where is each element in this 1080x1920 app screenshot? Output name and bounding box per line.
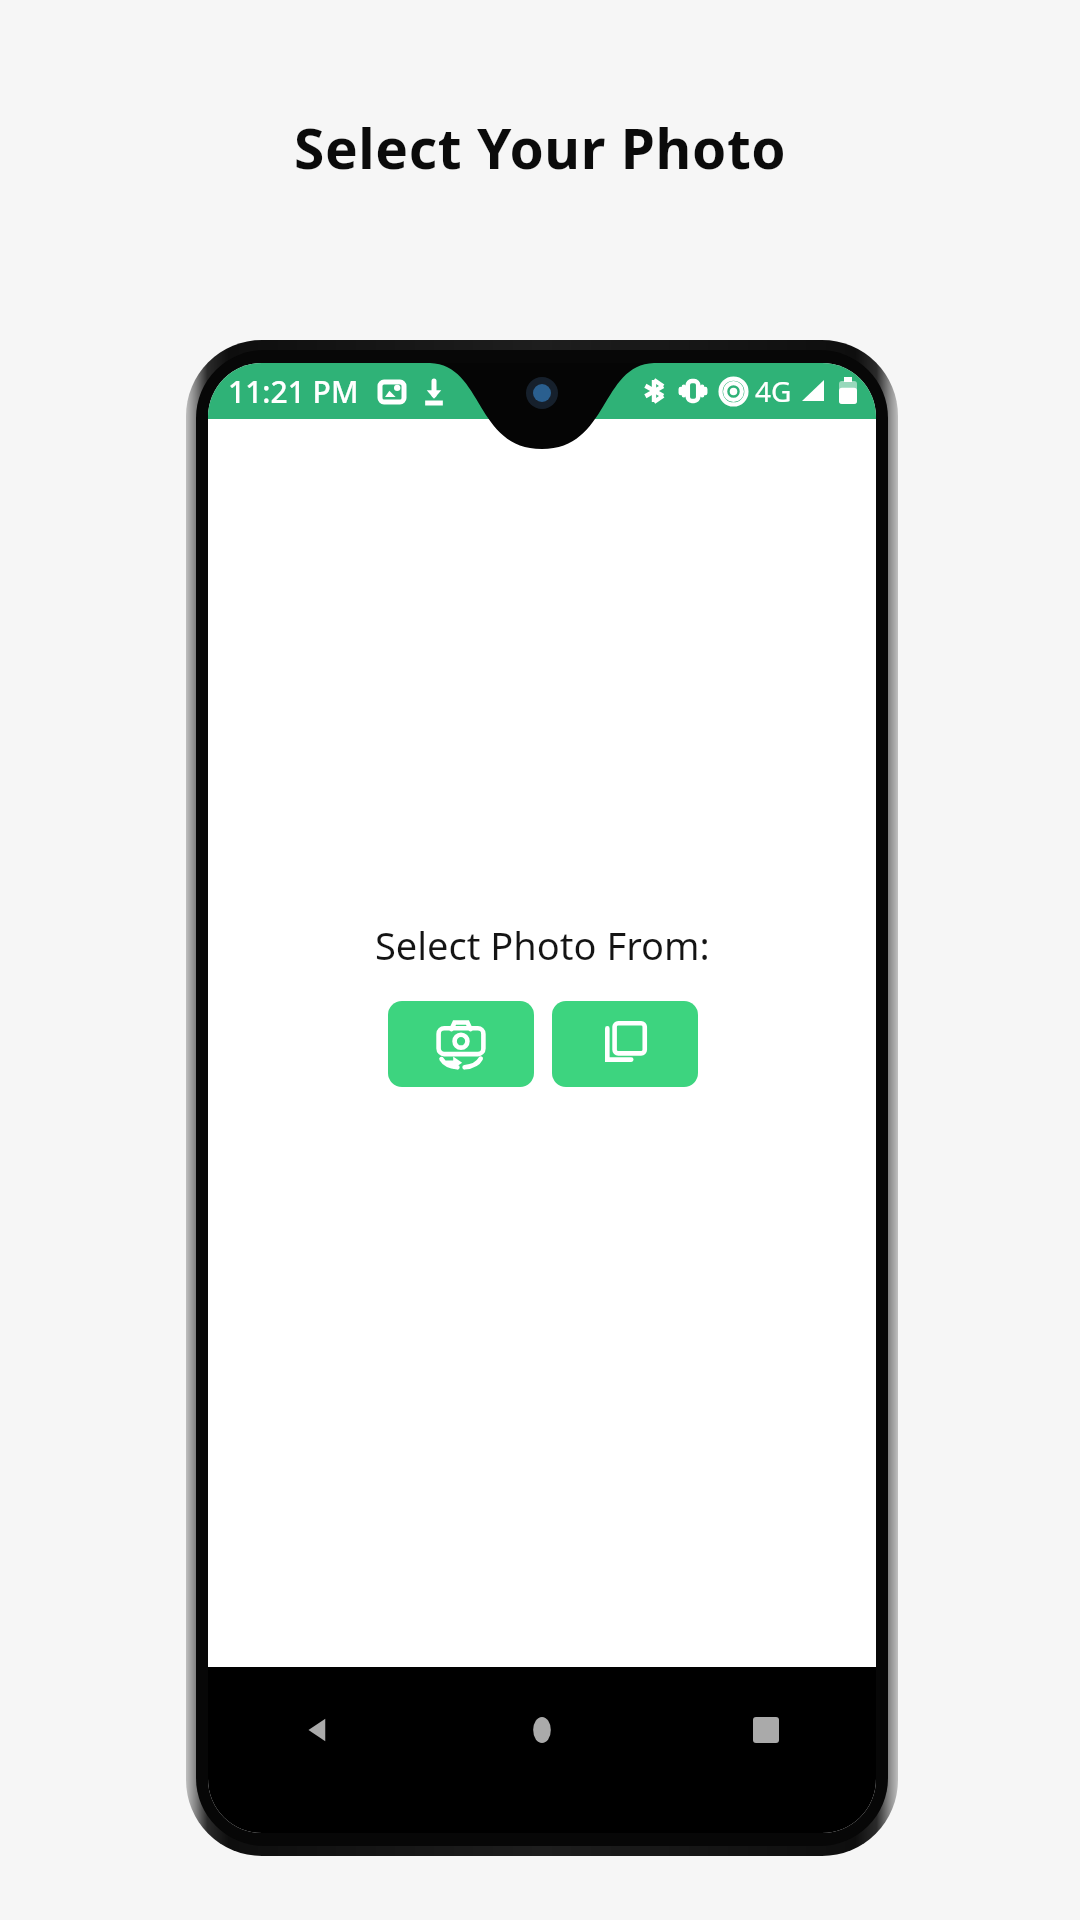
staticText: Select Your Photo: [294, 110, 787, 185]
button[interactable]: Recent apps: [743, 1707, 789, 1753]
button[interactable]: Back: [295, 1707, 341, 1753]
staticText: Select Photo From:: [375, 919, 710, 971]
staticText: 11:21 PM: [228, 371, 359, 412]
staticText: 4G: [755, 372, 792, 410]
button[interactable]: Pick from gallery: [552, 1001, 698, 1087]
button[interactable]: Take photo: [388, 1001, 534, 1087]
button[interactable]: Home: [519, 1707, 565, 1753]
